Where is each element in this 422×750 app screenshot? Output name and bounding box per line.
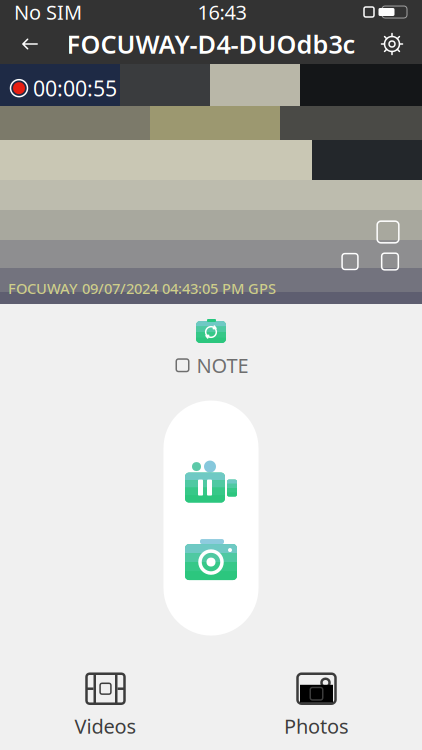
button[interactable]: Mute: [330, 244, 370, 278]
button[interactable]: Lock recording: [366, 210, 410, 254]
staticText: Videos: [74, 713, 136, 739]
button[interactable]: Record video: [171, 447, 251, 517]
staticText: FOCUWAY 09/07/2024 04:43:05 PM GPS: [8, 278, 276, 298]
staticText: 16:43: [197, 0, 246, 25]
staticText: NOTE: [196, 352, 248, 379]
button[interactable]: Photos: [211, 670, 422, 742]
button[interactable]: Videos: [0, 670, 211, 742]
staticText: 00:00:55: [33, 74, 117, 102]
staticText: Photos: [284, 713, 349, 739]
button[interactable]: Back: [8, 22, 52, 66]
button[interactable]: Settings: [370, 22, 414, 66]
button[interactable]: Full screen: [370, 244, 410, 278]
staticText: No SIM: [14, 0, 82, 25]
button[interactable]: Switch camera: [194, 318, 228, 346]
staticText: FOCUWAY-D4-DUOdb3c: [66, 27, 355, 61]
button[interactable]: Take photo: [171, 525, 251, 595]
